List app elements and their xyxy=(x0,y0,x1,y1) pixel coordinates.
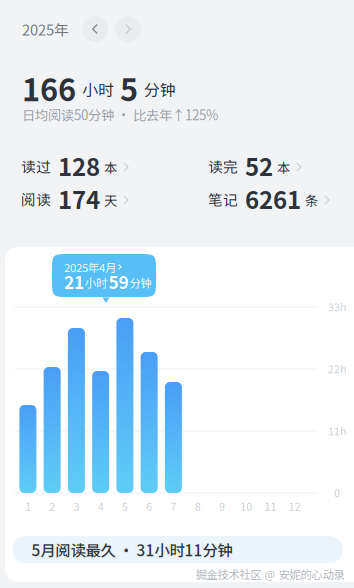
staticText: 阅读 xyxy=(21,188,51,210)
staticText: 2025年4月 xyxy=(64,259,116,275)
staticText: 读完 xyxy=(208,155,238,177)
staticText: 小时 xyxy=(85,274,107,291)
staticText: 10 xyxy=(240,498,252,514)
staticText: 12 xyxy=(289,498,301,514)
staticText: 读过 xyxy=(21,155,51,177)
staticText: 本 xyxy=(104,157,117,177)
staticText: 33h xyxy=(328,299,346,314)
staticText: 21 xyxy=(64,269,84,294)
staticText: 分钟 xyxy=(144,77,176,101)
button[interactable]: 读完 xyxy=(208,149,301,183)
staticText: 9 xyxy=(219,498,225,514)
button[interactable]: Next year xyxy=(115,16,141,42)
staticText: 2025年 xyxy=(22,18,69,40)
staticText: 2 xyxy=(49,498,55,514)
button[interactable]: Previous year xyxy=(82,16,108,42)
staticText: 小时 xyxy=(82,77,114,101)
staticText: 11h xyxy=(328,423,346,438)
staticText: 166 xyxy=(22,66,76,110)
button[interactable]: 读过 xyxy=(21,149,208,183)
staticText: 128 xyxy=(58,148,100,183)
staticText: 11 xyxy=(264,498,276,514)
staticText: 日均阅读50分钟 · 比去年↑125% xyxy=(22,105,218,124)
staticText: 0 xyxy=(334,485,340,500)
staticText: 3 xyxy=(73,498,79,514)
staticText: 59 xyxy=(108,269,128,294)
staticText: 分钟 xyxy=(129,274,151,291)
staticText: 条 xyxy=(305,190,318,210)
staticText: 天 xyxy=(104,190,117,210)
staticText: 7 xyxy=(170,498,176,514)
staticText: 4 xyxy=(98,498,104,514)
button[interactable]: 阅读 xyxy=(21,182,208,216)
staticText: 笔记 xyxy=(208,188,238,210)
staticText: 掘金技术社区 @ 安妮的心动录 xyxy=(195,566,344,582)
staticText: 6261 xyxy=(245,181,301,216)
staticText: 1 xyxy=(25,498,31,514)
staticText: 5月阅读最久 · 31小时11分钟 xyxy=(31,538,232,561)
staticText: 52 xyxy=(245,148,273,183)
button[interactable]: 笔记 xyxy=(208,182,329,216)
staticText: 5 xyxy=(120,66,138,110)
staticText: 本 xyxy=(277,157,290,177)
staticText: 6 xyxy=(146,498,152,514)
staticText: 5 xyxy=(122,498,128,514)
staticText: 8 xyxy=(195,498,201,514)
staticText: 174 xyxy=(58,181,100,216)
staticText: 22h xyxy=(328,361,346,376)
